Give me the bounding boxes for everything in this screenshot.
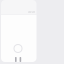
staticText: Upgrade [28,11,35,13]
